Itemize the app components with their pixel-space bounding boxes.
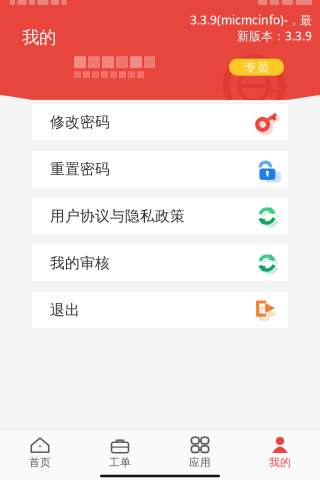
button[interactable]: 应用 (160, 431, 240, 472)
button[interactable]: 首页 (0, 431, 80, 472)
staticText: 首页 (29, 456, 51, 469)
button[interactable]: 退出 (32, 292, 288, 328)
staticText: 用户协议与隐私政策 (50, 207, 185, 225)
staticText: 重置密码 (50, 160, 110, 178)
button[interactable]: 修改密码 (32, 104, 288, 140)
staticText: 我的 (22, 27, 56, 48)
button[interactable]: 我的 (240, 431, 320, 472)
button[interactable]: 重置密码 (32, 151, 288, 187)
staticText: 我的 (269, 456, 291, 469)
staticText: 专员 (244, 60, 268, 74)
staticText: 工单 (109, 456, 131, 469)
button[interactable]: 专员 (229, 59, 284, 76)
staticText: 我的审核 (50, 254, 110, 272)
staticText: 新版本：3.3.9 (237, 28, 312, 44)
staticText: 修改密码 (50, 113, 110, 131)
button[interactable]: 我的审核 (32, 245, 288, 281)
staticText: 3.3.9(micmcinfo)-，最 (190, 12, 312, 28)
button[interactable]: 用户协议与隐私政策 (32, 198, 288, 234)
button[interactable]: 工单 (80, 431, 160, 472)
staticText: 退出 (50, 301, 80, 319)
staticText: 应用 (189, 456, 211, 469)
